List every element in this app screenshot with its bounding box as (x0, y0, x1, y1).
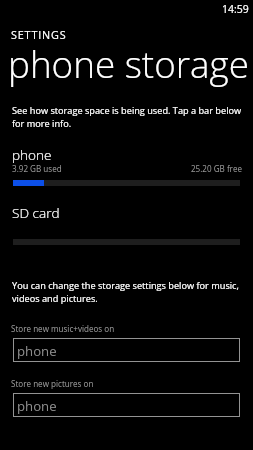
staticText: 25.20 GB free (142, 163, 242, 174)
staticText: phone storage (8, 39, 249, 89)
staticText: You can change the storage settings belo… (12, 279, 252, 305)
staticText: phone (17, 397, 57, 415)
staticText: Store new music+videos on (11, 323, 115, 334)
staticText: 3.92 GB used (12, 163, 62, 174)
staticText: phone (17, 342, 57, 360)
button[interactable]: phone (0, 142, 253, 192)
staticText: phone (12, 145, 52, 164)
button[interactable]: Clock, 14:59 (216, 0, 253, 18)
staticText: See how storage space is being used. Tap… (12, 104, 252, 130)
staticText: SD card (12, 203, 60, 222)
staticText: 14:59 (222, 2, 249, 16)
button[interactable]: SD card (0, 200, 253, 250)
staticText: Store new pictures on (11, 378, 94, 389)
button[interactable]: Store new pictures on: phone (13, 393, 240, 417)
staticText: SETTINGS (11, 27, 67, 42)
button[interactable]: Store new music and videos on: phone (13, 338, 240, 362)
